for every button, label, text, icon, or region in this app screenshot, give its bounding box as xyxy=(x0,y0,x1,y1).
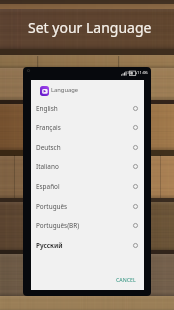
button[interactable]: Português xyxy=(31,196,144,216)
staticText: Set your Language xyxy=(28,18,152,37)
button[interactable]: Italiano xyxy=(31,156,144,176)
button[interactable]: English xyxy=(31,98,144,118)
staticText: CANCEL xyxy=(116,276,136,283)
staticText: Русский xyxy=(36,241,63,250)
button[interactable]: CANCEL xyxy=(116,276,136,283)
staticText: 3G xyxy=(127,70,132,75)
staticText: Português(BR) xyxy=(36,221,80,230)
staticText: 11:06 xyxy=(137,70,148,76)
button[interactable]: Русский xyxy=(31,235,144,255)
button[interactable]: Español xyxy=(31,176,144,196)
staticText: Italiano xyxy=(36,162,59,171)
button[interactable]: Français xyxy=(31,117,144,137)
staticText: Español xyxy=(36,182,60,191)
staticText: Deutsch xyxy=(36,143,61,152)
button[interactable]: Português(BR) xyxy=(31,215,144,235)
staticText: English xyxy=(36,104,58,113)
staticText: Language xyxy=(51,86,79,94)
staticText: Português xyxy=(36,202,68,211)
staticText: Français xyxy=(36,123,61,132)
button[interactable]: Deutsch xyxy=(31,137,144,157)
